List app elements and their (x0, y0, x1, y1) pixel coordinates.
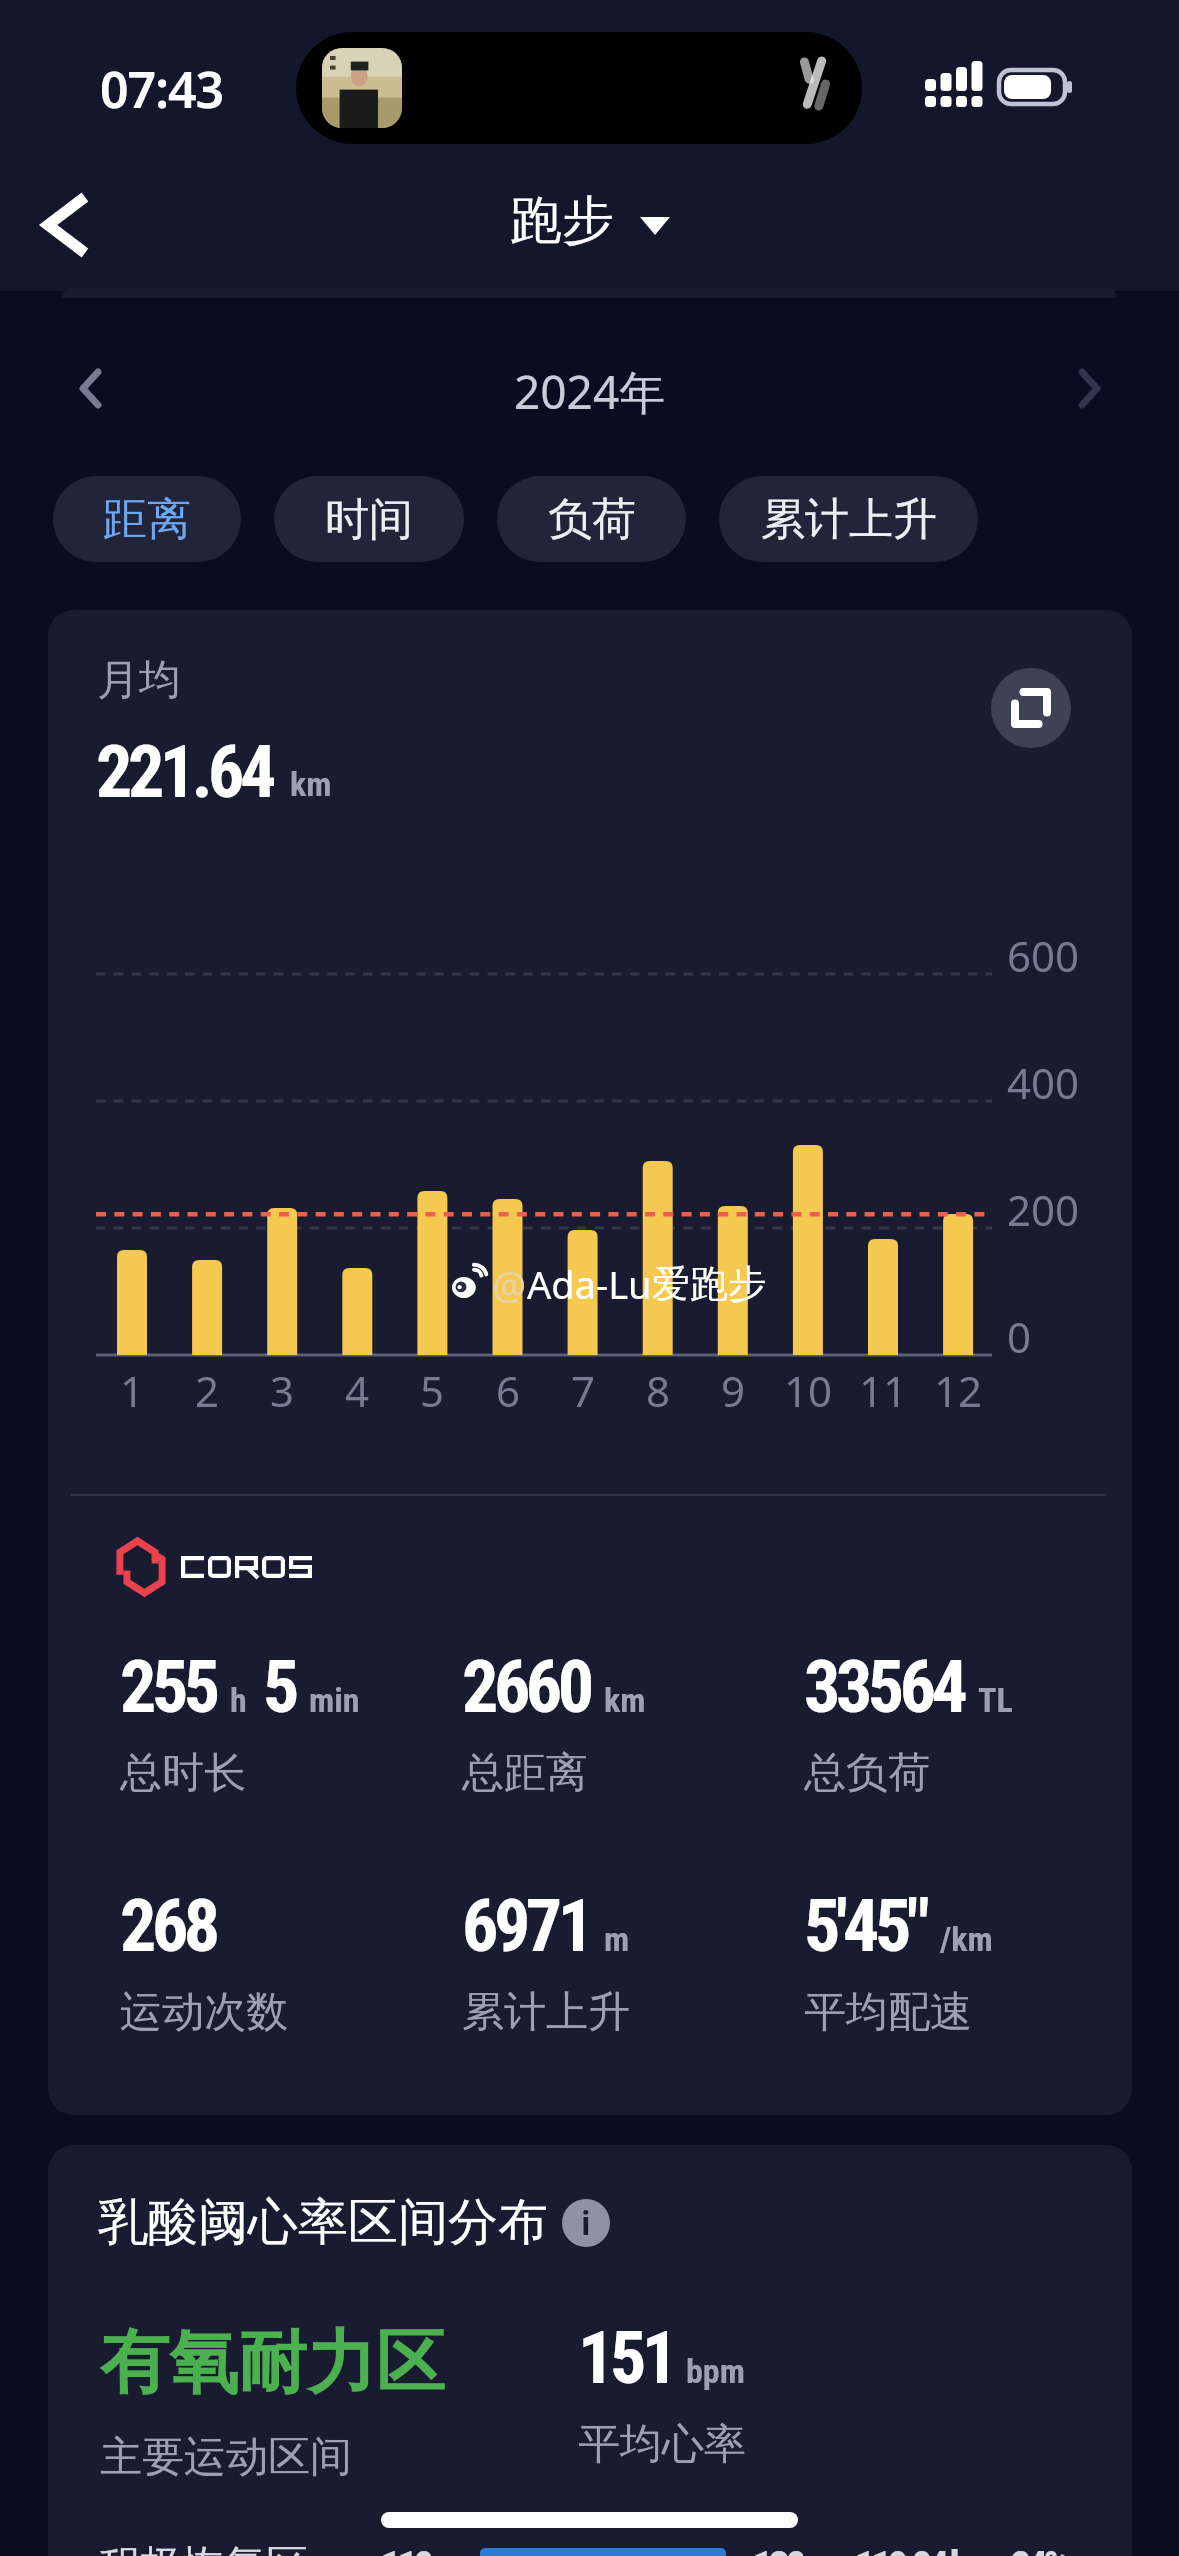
staticText: 1 (120, 1362, 145, 1419)
staticText: i (581, 2201, 591, 2245)
staticText: 5'45" (804, 1884, 926, 1968)
staticText: 时间 (325, 492, 413, 547)
staticText: 总时长 (120, 1747, 246, 1800)
button[interactable]: 距离 (53, 476, 241, 562)
staticText: 平均心率 (578, 2418, 746, 2471)
staticText: 12 (934, 1362, 983, 1419)
staticText: 5 (420, 1362, 445, 1419)
staticText: 9 (721, 1362, 746, 1419)
staticText: km (604, 1680, 646, 1720)
button[interactable]: Next year (1049, 348, 1129, 428)
staticText: h (230, 1680, 247, 1720)
button[interactable]: Previous year (50, 348, 130, 428)
button[interactable]: 时间 (274, 476, 464, 562)
staticText: 6971 (462, 1884, 590, 1968)
staticText: 600 (1007, 927, 1080, 984)
button[interactable]: Back (18, 177, 114, 273)
staticText: 221.64 (96, 730, 272, 814)
staticText: 月均 (97, 654, 181, 707)
staticText: 119:04 h (854, 2542, 966, 2556)
staticText: 6 (496, 1362, 521, 1419)
staticText: /km (940, 1919, 993, 1959)
staticText: 10 (784, 1362, 833, 1419)
button[interactable]: Info (562, 2199, 610, 2247)
staticText: 0 (1007, 1308, 1032, 1365)
staticText: 119 (380, 2542, 431, 2556)
staticText: 33564 (804, 1645, 964, 1729)
staticText: 151 (578, 2316, 674, 2400)
staticText: 爱跑步 (652, 1260, 766, 1308)
button[interactable]: Expand chart (991, 668, 1071, 748)
staticText: 2024年 (514, 360, 666, 423)
staticText: m (604, 1919, 630, 1959)
staticText: TL (978, 1680, 1013, 1720)
staticText: 8 (646, 1362, 671, 1419)
staticText: 距离 (103, 492, 191, 547)
button[interactable]: 累计上升 (719, 476, 978, 562)
staticText: 5 (263, 1645, 295, 1729)
staticText: 7 (571, 1362, 596, 1419)
staticText: 2 (195, 1362, 220, 1419)
staticText: 11 (859, 1362, 908, 1419)
staticText: 乳酸阈心率区间分布 (98, 2191, 548, 2254)
button[interactable]: 负荷 (497, 476, 686, 562)
staticText: 平均配速 (804, 1986, 972, 2039)
staticText: 4 (345, 1362, 370, 1419)
staticText: 负荷 (548, 492, 636, 547)
staticText: @ (492, 1258, 527, 1310)
staticText: 07:43 (100, 55, 224, 123)
staticText: 24% (1010, 2542, 1066, 2556)
staticText: 积极恢复区 (98, 2540, 308, 2556)
staticText: 累计上升 (462, 1986, 630, 2039)
staticText: 总负荷 (804, 1747, 930, 1800)
staticText: 2660 (462, 1645, 590, 1729)
staticText: Ada-Lu (527, 1258, 652, 1310)
staticText: 400 (1007, 1054, 1080, 1111)
staticText: 运动次数 (120, 1986, 288, 2039)
staticText: min (309, 1680, 360, 1720)
staticText: 总距离 (462, 1747, 588, 1800)
staticText: 130 (752, 2542, 803, 2556)
staticText: 268 (120, 1884, 216, 1968)
staticText: 200 (1007, 1181, 1080, 1238)
staticText: 累计上升 (761, 492, 937, 547)
staticText: 3 (270, 1362, 295, 1419)
staticText: km (290, 764, 332, 804)
staticText: 主要运动区间 (100, 2431, 352, 2484)
staticText: 跑步 (510, 188, 614, 254)
staticText: bpm (686, 2351, 745, 2391)
staticText: 255 (120, 1645, 216, 1729)
button[interactable]: 跑步 (510, 188, 670, 254)
staticText: 有氧耐力区 (100, 2320, 445, 2407)
